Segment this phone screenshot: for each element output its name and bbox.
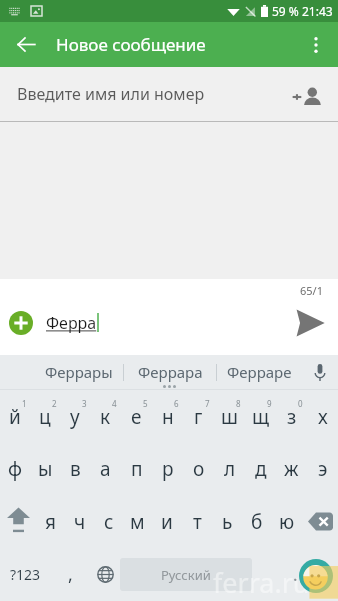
button[interactable]: ц [30,390,60,442]
button[interactable]: ь [212,495,242,548]
staticText: о [193,456,205,482]
staticText: Русский [161,566,211,584]
button[interactable]: о [183,442,214,495]
staticText: , [68,562,73,587]
staticText: 1 [22,398,27,409]
button[interactable]: л [214,442,245,495]
button[interactable]: ш [214,390,245,442]
button[interactable]: в [60,442,90,495]
staticText: у [70,404,80,430]
button[interactable]: у [60,390,90,442]
button[interactable]: ы [30,442,60,495]
button[interactable]: ю [272,495,302,548]
staticText: н [162,404,174,430]
button[interactable]: Backspace [302,495,338,548]
staticText: ц [39,404,51,430]
button[interactable]: More options [293,22,338,67]
button[interactable]: к [90,390,121,442]
button[interactable]: , [50,548,90,601]
button[interactable]: ж [276,442,307,495]
staticText: к [100,404,111,430]
staticText: 7 [205,398,210,409]
button[interactable]: щ [245,390,276,442]
staticText: 4 [112,398,117,409]
staticText: Феррара [138,362,203,382]
staticText: щ [252,404,270,430]
button[interactable]: Back [4,22,49,67]
staticText: ж [284,456,299,482]
button[interactable]: п [121,442,152,495]
button[interactable]: б [242,495,272,548]
button[interactable]: ч [65,495,94,548]
staticText: с [104,509,114,535]
button[interactable]: я [36,495,65,548]
staticText: 5 [143,398,148,409]
staticText: г [194,404,203,430]
staticText: 8 [236,398,241,409]
button[interactable]: з [276,390,307,442]
button[interactable]: Add contact [286,76,328,118]
button[interactable]: Феррара [124,355,216,389]
staticText: б [251,509,263,535]
staticText: л [224,456,236,482]
staticText: Феррары [45,362,113,382]
staticText: п [131,456,143,482]
staticText: Ферраре [227,362,292,382]
staticText: Новое сообщение [56,33,206,56]
button[interactable]: Shift [0,495,36,548]
staticText: я [45,509,56,535]
staticText: ф [8,456,23,482]
button[interactable]: и [152,495,182,548]
staticText: 2 [52,398,57,409]
button[interactable]: ф [0,442,30,495]
staticText: ш [221,404,238,430]
staticText: а [100,456,111,482]
staticText: ю [279,509,295,535]
staticText: 59 % 21:43 [272,3,333,19]
staticText: м [130,509,145,535]
staticText: Ферра [46,312,97,334]
staticText: 65/1 [300,283,323,298]
button[interactable]: е [121,390,152,442]
staticText: 9 [267,398,272,409]
button[interactable]: . [252,548,338,601]
staticText: ч [74,509,86,535]
staticText: е [131,404,142,430]
staticText: х [318,404,328,430]
button[interactable]: х [307,390,338,442]
button[interactable]: й [0,390,30,442]
button[interactable]: с [94,495,123,548]
button[interactable]: т [182,495,212,548]
button[interactable]: э [307,442,338,495]
button[interactable]: Send [290,303,330,343]
staticText: 3 [82,398,87,409]
staticText: ?123 [10,565,41,584]
staticText: э [318,456,328,482]
staticText: з [287,404,297,430]
staticText: . [293,562,298,587]
button[interactable]: Ферраре [217,355,301,389]
staticText: ы [38,456,53,482]
button[interactable]: д [245,442,276,495]
staticText: й [9,404,21,430]
button[interactable]: Феррары [0,355,123,389]
button[interactable]: м [123,495,152,548]
button[interactable]: ?123 [0,548,50,601]
staticText: р [162,456,174,482]
staticText: Введите имя или номер [17,83,205,105]
staticText: 6 [174,398,179,409]
button[interactable]: Русский [120,558,252,591]
staticText: и [161,509,173,535]
button[interactable]: р [152,442,183,495]
button[interactable]: а [90,442,121,495]
staticText: д [255,456,267,482]
button[interactable]: г [183,390,214,442]
button[interactable]: н [152,390,183,442]
staticText: ferra.ru [213,564,310,601]
staticText: 0 [298,398,303,409]
button[interactable]: Voice input [301,355,338,389]
button[interactable]: Change language [90,548,120,601]
button[interactable]: Attach [8,310,34,336]
staticText: т [193,509,202,535]
staticText: ь [222,509,233,535]
